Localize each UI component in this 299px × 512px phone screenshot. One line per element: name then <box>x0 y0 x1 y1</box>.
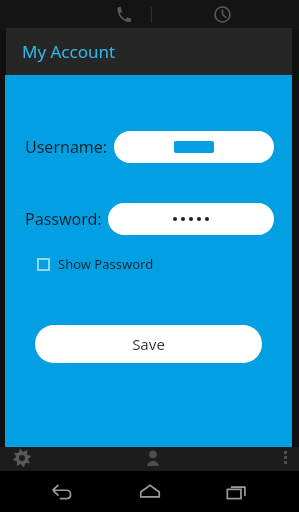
staticText: Save <box>132 334 165 354</box>
button[interactable]: Recent apps <box>217 472 257 512</box>
button[interactable] <box>108 203 274 235</box>
button[interactable] <box>114 131 274 163</box>
staticText: Username: <box>25 136 108 158</box>
staticText: My Account <box>22 40 116 63</box>
staticText: Password: <box>25 208 102 230</box>
staticText: Show Password <box>58 255 154 273</box>
button[interactable]: Home <box>130 472 170 512</box>
button[interactable]: Show Password <box>35 251 156 277</box>
button[interactable]: Save <box>35 325 262 363</box>
button[interactable]: Back <box>42 472 82 512</box>
